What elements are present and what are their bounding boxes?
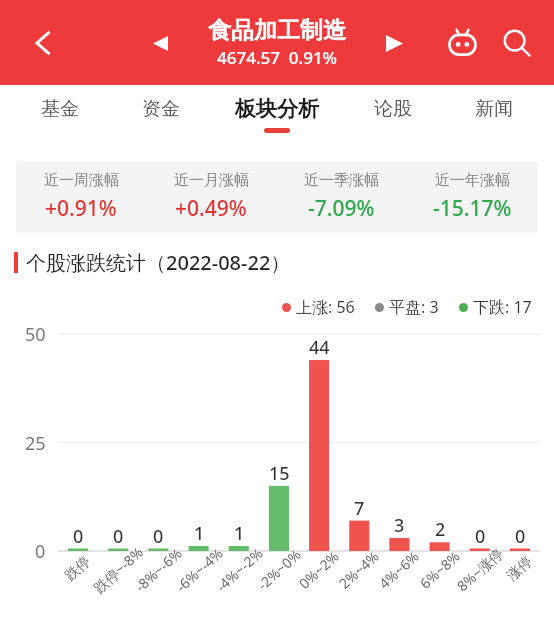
staticText: -2%~0% [253,545,305,594]
button[interactable]: 近一周涨幅 [16,171,146,223]
button[interactable]: 平盘: 3 [375,296,439,318]
button[interactable]: Search [494,20,540,66]
staticText: 0 [113,524,124,549]
staticText: 4%~6% [375,546,423,593]
staticText: 0 [153,524,164,549]
staticText: 食品加工制造 [208,16,346,45]
staticText: 跌停~-8% [89,542,147,597]
staticText: 25 [25,431,46,456]
button[interactable]: Next sector [375,24,413,62]
staticText: 平盘: 3 [389,296,439,318]
button[interactable]: 论股 [342,85,443,143]
staticText: 基金 [41,97,79,121]
staticText: 涨停 [504,553,536,585]
button[interactable]: 食品加工制造 [208,16,346,69]
staticText: 15 [269,461,290,486]
staticText: +0.49% [175,194,247,223]
staticText: 1 [234,521,245,546]
staticText: 7 [354,496,365,521]
staticText: 个股涨跌统计（2022-08-22） [26,249,291,276]
button[interactable]: Back [20,20,66,66]
staticText: +0.91% [45,194,117,223]
button[interactable]: 近一月涨幅 [146,171,276,223]
staticText: 近一月涨幅 [174,171,249,190]
staticText: 板块分析 [235,96,319,122]
staticText: 近一年涨幅 [435,171,510,190]
staticText: 上涨: 56 [296,296,355,318]
staticText: 3 [394,513,405,538]
staticText: 44 [309,335,330,360]
staticText: -7.09% [308,194,375,223]
button[interactable]: 新闻 [443,85,544,143]
button[interactable]: 下跌: 17 [459,296,532,318]
staticText: 下跌: 17 [473,296,532,318]
staticText: 8%~涨停 [453,544,507,595]
staticText: -4%~-2% [212,543,267,596]
staticText: 0 [35,539,46,564]
staticText: 2%~4% [335,546,383,593]
staticText: -6%~-4% [172,543,227,596]
staticText: 50 [25,322,46,347]
staticText: 新闻 [475,97,513,121]
button[interactable]: 板块分析 [211,85,342,143]
button[interactable]: 近一季涨幅 [276,171,407,223]
staticText: 近一周涨幅 [44,171,119,190]
staticText: 0%~2% [295,546,343,593]
button[interactable]: Previous sector [141,24,179,62]
button[interactable]: 近一年涨幅 [407,171,538,223]
staticText: -8%~-6% [131,543,186,596]
staticText: 4674.57 0.91% [217,46,338,69]
staticText: 6%~8% [416,546,464,593]
button[interactable]: AI assistant [440,21,484,65]
staticText: 资金 [142,97,180,121]
button[interactable]: 上涨: 56 [282,296,355,318]
staticText: 论股 [374,97,412,121]
button[interactable]: 基金 [10,85,110,143]
staticText: 近一季涨幅 [304,171,379,190]
staticText: 跌停 [62,553,94,585]
staticText: 2 [435,517,446,542]
staticText: 1 [194,521,205,546]
staticText: 0 [475,524,486,549]
button[interactable]: 资金 [110,85,211,143]
staticText: 0 [73,524,84,549]
staticText: -15.17% [433,194,512,223]
staticText: 0 [515,524,526,549]
